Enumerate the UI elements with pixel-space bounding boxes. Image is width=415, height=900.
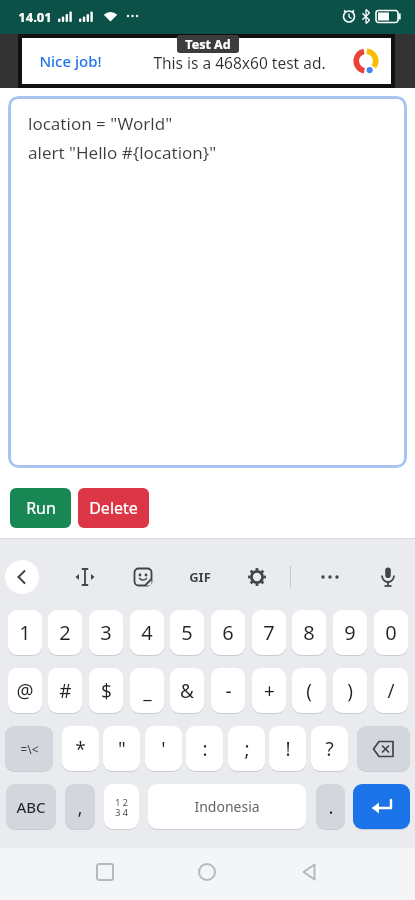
button[interactable]: "	[103, 726, 140, 771]
staticText: (	[306, 678, 312, 704]
staticText: .	[328, 794, 334, 820]
staticText: Delete	[89, 497, 138, 519]
staticText: 0	[385, 619, 397, 646]
button[interactable]: !	[269, 726, 306, 771]
button[interactable]: Nice job!	[22, 38, 391, 84]
button[interactable]: '	[145, 726, 182, 771]
staticText: Nice job!	[39, 51, 102, 71]
button[interactable]: ,	[65, 784, 95, 829]
button[interactable]: )	[333, 668, 367, 713]
staticText: ABC	[16, 797, 46, 817]
staticText: #	[59, 678, 72, 704]
staticText: 1 2 3 4	[115, 796, 128, 818]
staticText: Run	[26, 497, 56, 519]
button[interactable]: +	[252, 668, 286, 713]
staticText: 1	[19, 619, 31, 646]
staticText: :	[202, 736, 208, 762]
button[interactable]: *	[62, 726, 99, 771]
button[interactable]	[300, 862, 320, 882]
button[interactable]: 1 2 3 4	[104, 784, 139, 829]
staticText: 5	[181, 619, 193, 646]
staticText: "	[118, 736, 126, 762]
staticText: 4	[141, 619, 153, 646]
staticText: =\<	[20, 741, 39, 757]
staticText: )	[347, 678, 353, 704]
button[interactable]: ABC	[6, 784, 56, 829]
button[interactable]: ;	[228, 726, 265, 771]
staticText: '	[161, 736, 166, 762]
staticText: /	[387, 678, 395, 704]
button[interactable]: :	[186, 726, 223, 771]
button[interactable]: &	[170, 668, 204, 713]
staticText: Indonesia	[194, 797, 260, 816]
button[interactable]: $	[89, 668, 123, 713]
staticText: +	[264, 678, 275, 704]
button[interactable]: 3	[89, 610, 123, 655]
staticText: This is a 468x60 test ad.	[153, 52, 326, 72]
button[interactable]: 6	[211, 610, 245, 655]
button[interactable]: 8	[292, 610, 326, 655]
button[interactable]: Run	[10, 488, 71, 528]
button[interactable]	[357, 726, 410, 771]
button[interactable]: _	[130, 668, 164, 713]
button[interactable]: -	[211, 668, 245, 713]
button[interactable]	[318, 565, 342, 589]
staticText: GIF	[189, 568, 211, 586]
button[interactable]: 1	[8, 610, 42, 655]
staticText: @	[16, 678, 34, 704]
button[interactable]	[73, 565, 97, 589]
button[interactable]: ?	[311, 726, 348, 771]
staticText: ,	[77, 794, 83, 820]
staticText: -	[225, 678, 232, 704]
button[interactable]: location = "World" alert "Hello #{locati…	[8, 96, 407, 468]
button[interactable]: 0	[374, 610, 408, 655]
button[interactable]: (	[292, 668, 326, 713]
button[interactable]	[353, 784, 410, 829]
staticText: ?	[325, 736, 334, 762]
staticText: !	[285, 736, 291, 762]
staticText: ;	[244, 736, 250, 762]
staticText: *	[75, 736, 86, 762]
button[interactable]: 2	[48, 610, 82, 655]
button[interactable]	[95, 862, 115, 882]
staticText: &	[180, 678, 194, 704]
staticText: $	[101, 678, 112, 704]
staticText: 9	[344, 619, 356, 646]
staticText: Test Ad	[185, 36, 231, 53]
staticText: 14.01	[18, 8, 52, 26]
button[interactable]: =\<	[5, 726, 53, 771]
button[interactable]: /	[374, 668, 408, 713]
button[interactable]	[376, 565, 400, 589]
button[interactable]	[5, 560, 39, 594]
staticText: _	[143, 678, 152, 704]
button[interactable]	[131, 565, 155, 589]
button[interactable]	[245, 565, 269, 589]
button[interactable]: 5	[170, 610, 204, 655]
button[interactable]: .	[316, 784, 345, 829]
button[interactable]: GIF	[186, 565, 214, 589]
staticText: location = "World" alert "Hello #{locati…	[28, 112, 217, 164]
staticText: 3	[100, 619, 112, 646]
staticText: 6	[222, 619, 234, 646]
button[interactable]: Indonesia	[148, 784, 306, 829]
staticText: 2	[59, 619, 71, 646]
button[interactable]: Delete	[78, 488, 149, 528]
button[interactable]: 7	[252, 610, 286, 655]
button[interactable]: #	[48, 668, 82, 713]
button[interactable]: 9	[333, 610, 367, 655]
button[interactable]: @	[8, 668, 42, 713]
staticText: 8	[303, 619, 315, 646]
button[interactable]	[197, 862, 217, 882]
button[interactable]: 4	[130, 610, 164, 655]
staticText: 7	[263, 619, 275, 646]
